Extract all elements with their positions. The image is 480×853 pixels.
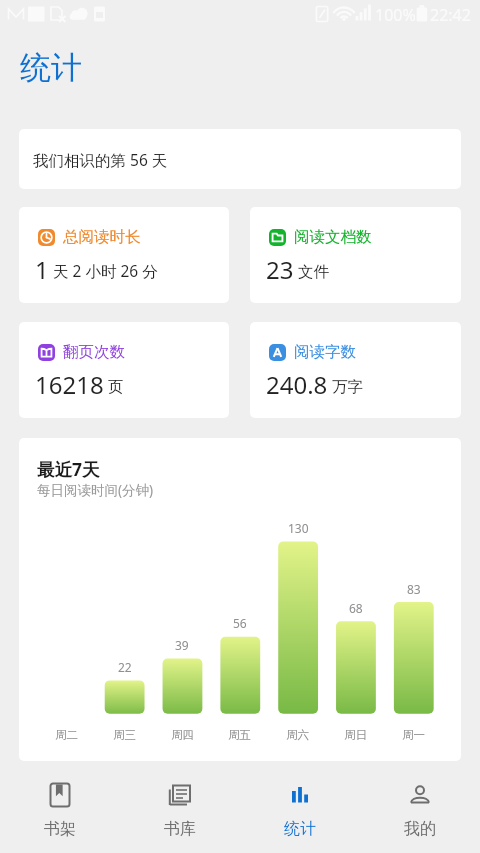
staticText: 周五 — [228, 728, 251, 742]
staticText: 22 — [118, 659, 132, 675]
staticText: 22:42 — [430, 4, 471, 26]
staticText: 书库 — [164, 819, 196, 839]
staticText: 周二 — [55, 728, 78, 742]
staticText: 83 — [407, 581, 421, 597]
staticText: 文件 — [294, 260, 330, 281]
staticText: 周六 — [286, 728, 309, 742]
staticText: 每日阅读时间(分钟) — [37, 481, 154, 499]
button[interactable]: 统计 — [240, 768, 360, 853]
staticText: 翻页次数 — [63, 342, 125, 362]
staticText: 我们相识的第 56 天 — [33, 149, 168, 170]
button[interactable]: 总阅读时长 — [19, 207, 229, 303]
staticText: 万字 — [328, 375, 364, 396]
button[interactable]: 书架 — [0, 768, 120, 853]
staticText: 周日 — [344, 728, 367, 742]
staticText: 总阅读时长 — [63, 227, 141, 247]
staticText: 68 — [349, 600, 363, 616]
staticText: 统计 — [284, 819, 316, 839]
staticText: 56 — [233, 615, 247, 631]
staticText: 书架 — [44, 819, 76, 839]
staticText: 周一 — [402, 728, 425, 742]
staticText: 130 — [288, 520, 309, 536]
staticText: 最近7天 — [37, 457, 100, 481]
button[interactable]: 书库 — [120, 768, 240, 853]
button[interactable]: 阅读文档数 — [250, 207, 461, 303]
staticText: 统计 — [20, 48, 82, 87]
staticText: 100% — [375, 4, 416, 26]
staticText: 页 — [104, 375, 124, 396]
button[interactable]: 翻页次数 — [19, 322, 229, 418]
staticText: 39 — [175, 637, 189, 653]
staticText: 阅读文档数 — [294, 227, 372, 247]
staticText: 阅读字数 — [294, 342, 356, 362]
staticText: 16218 — [35, 368, 104, 401]
staticText: 240.8 — [266, 368, 328, 401]
staticText: 周四 — [171, 728, 194, 742]
button[interactable]: 阅读字数 — [250, 322, 461, 418]
staticText: 天 2 小时 26 分 — [49, 260, 158, 281]
staticText: 周三 — [113, 728, 136, 742]
staticText: 我的 — [404, 819, 436, 839]
staticText: 23 — [266, 253, 294, 286]
button[interactable]: 我的 — [360, 768, 480, 853]
staticText: 1 — [35, 253, 49, 286]
